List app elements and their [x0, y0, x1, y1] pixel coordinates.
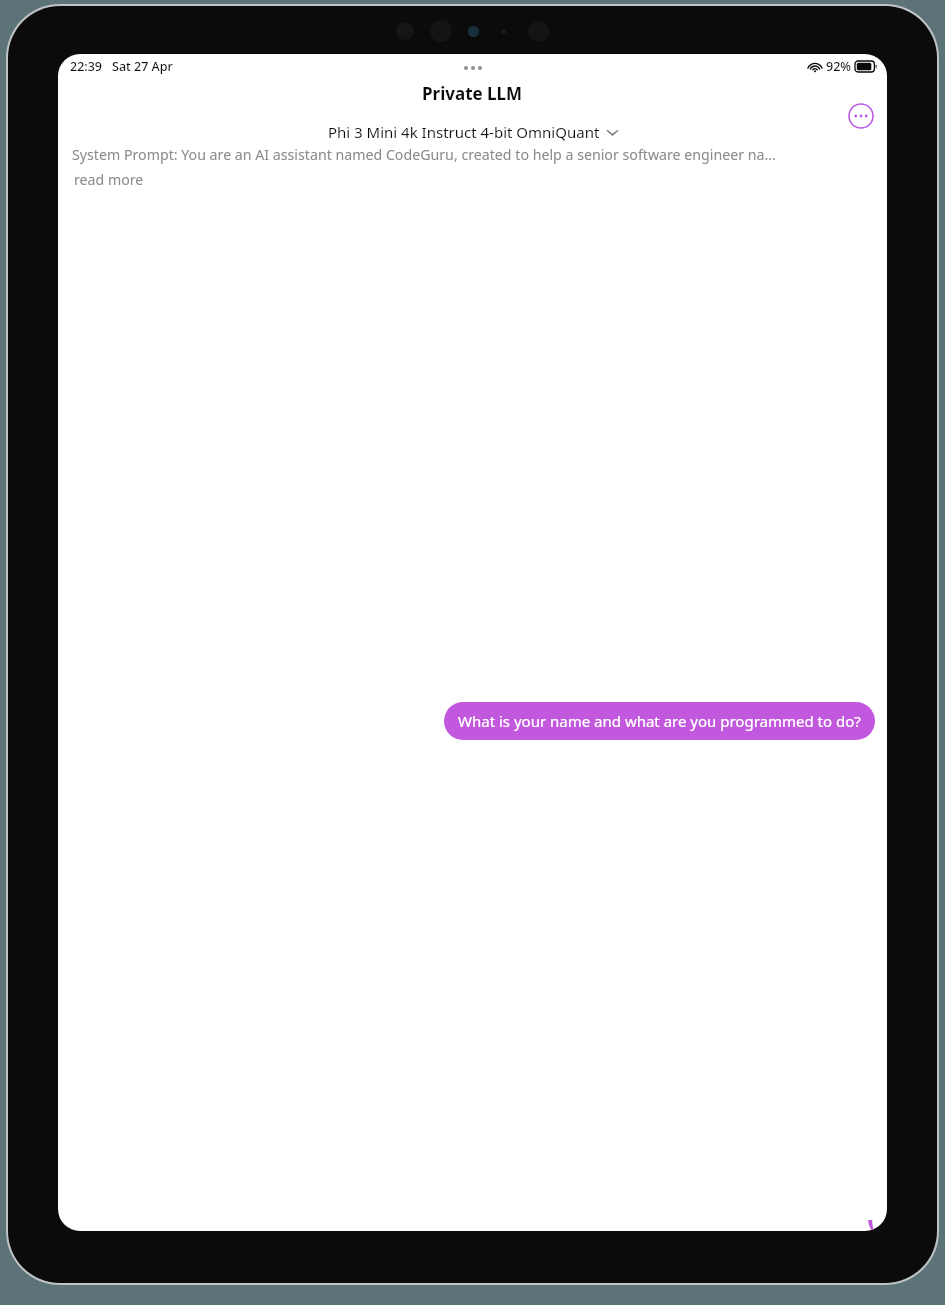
staticText: What is your name and what are you progr… — [458, 711, 861, 731]
button[interactable]: read more — [72, 170, 146, 189]
staticText: Phi 3 Mini 4k Instruct 4-bit OmniQuant — [328, 122, 600, 142]
staticText: 92% — [826, 58, 851, 75]
staticText: Sat 27 Apr — [112, 58, 173, 75]
button[interactable]: More options — [845, 100, 877, 132]
staticText: Private LLM — [422, 82, 523, 105]
button[interactable]: Phi 3 Mini 4k Instruct 4-bit OmniQuant — [322, 119, 624, 145]
staticText: 22:39 — [70, 58, 103, 75]
button[interactable]: What is your name and what are you progr… — [444, 702, 875, 740]
staticText: read more — [74, 170, 144, 189]
staticText: System Prompt: You are an AI assistant n… — [72, 145, 776, 164]
